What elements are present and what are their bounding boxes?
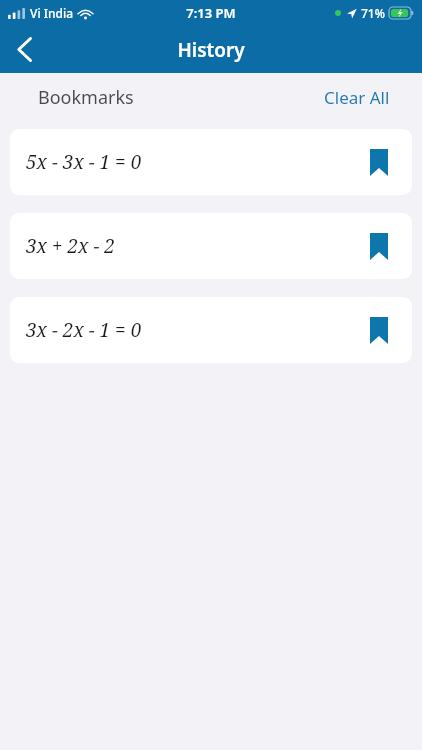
staticText: Vi India — [30, 5, 74, 21]
button[interactable]: Clear All — [322, 82, 392, 113]
staticText: 5x − 3x − 1 = 0 — [26, 149, 142, 175]
staticText: History — [177, 37, 245, 63]
staticText: 71% — [361, 5, 385, 21]
staticText: 7:13 PM — [186, 4, 236, 22]
button[interactable]: Bookmark — [362, 310, 396, 350]
button[interactable]: 3x − 2x − 1 = 0 — [10, 297, 412, 363]
button[interactable]: Back — [0, 26, 48, 73]
staticText: Clear All — [324, 86, 390, 109]
staticText: Bookmarks — [38, 85, 134, 110]
staticText: 3x − 2x − 1 = 0 — [26, 317, 142, 343]
button[interactable]: Bookmark — [362, 142, 396, 182]
button[interactable]: 5x − 3x − 1 = 0 — [10, 129, 412, 195]
button[interactable]: 3x + 2x − 2 — [10, 213, 412, 279]
staticText: 3x + 2x − 2 — [26, 233, 115, 259]
button[interactable]: Bookmark — [362, 226, 396, 266]
